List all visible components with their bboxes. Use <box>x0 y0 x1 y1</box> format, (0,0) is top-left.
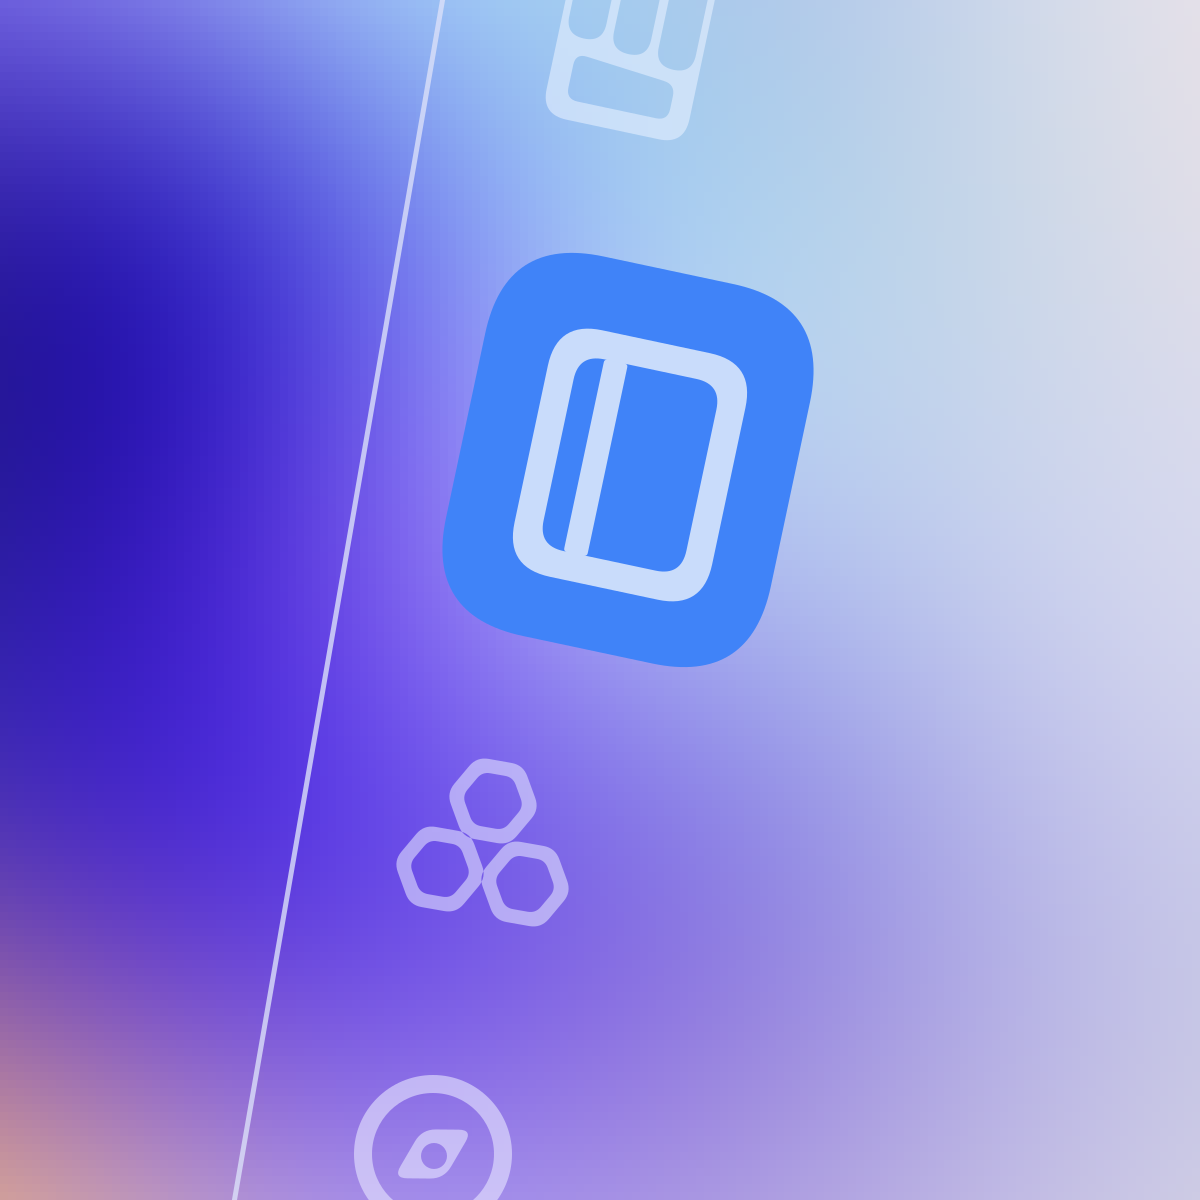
button[interactable]: Honeycomb <box>0 0 1200 1200</box>
button[interactable]: Reader <box>0 0 1200 1200</box>
button[interactable]: Compass <box>0 0 1200 1200</box>
button[interactable]: Store <box>0 0 1200 1200</box>
